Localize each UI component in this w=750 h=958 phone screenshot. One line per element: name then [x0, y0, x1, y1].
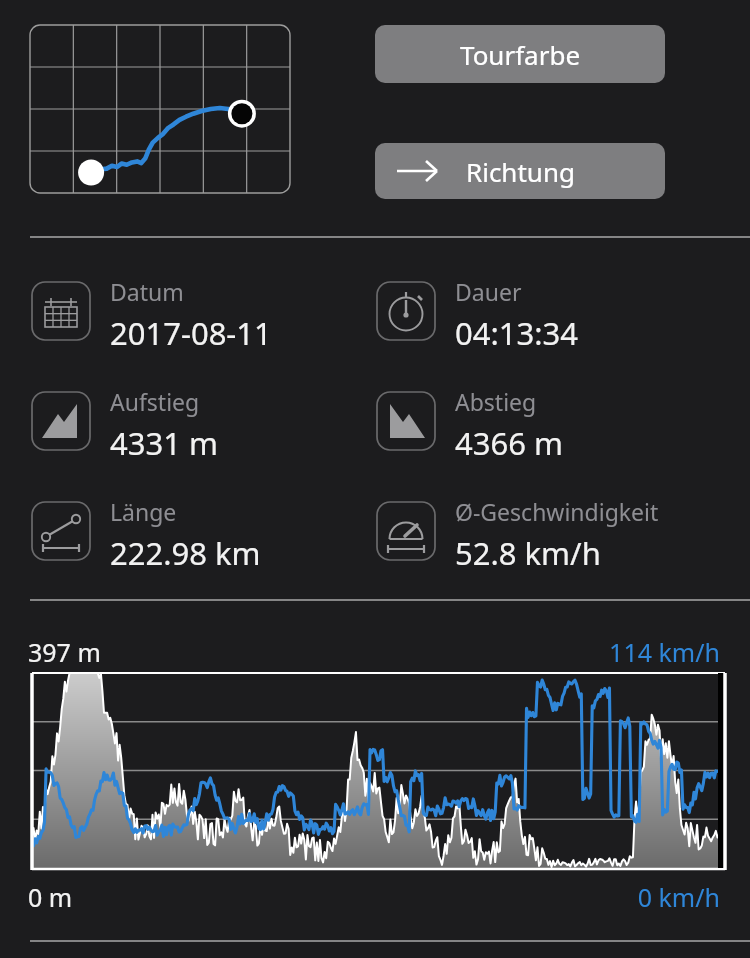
button[interactable]: Direction arrow: [375, 143, 665, 199]
staticText: 4331 m: [110, 422, 218, 464]
button[interactable]: Ø-Geschwindigkeit: [455, 496, 659, 574]
staticText: 114 km/h: [490, 635, 720, 669]
staticText: Dauer: [455, 276, 522, 307]
button[interactable]: Tourfarbe: [375, 25, 665, 83]
staticText: Abstieg: [455, 386, 537, 417]
button[interactable]: Länge: [110, 496, 261, 574]
staticText: 0 m: [28, 880, 73, 914]
staticText: 04:13:34: [455, 312, 579, 354]
staticText: 2017-08-11: [110, 312, 272, 354]
staticText: 0 km/h: [490, 880, 720, 914]
staticText: Länge: [110, 496, 177, 527]
button[interactable]: Dauer: [455, 276, 579, 354]
staticText: 222.98 km: [110, 532, 261, 574]
staticText: Datum: [110, 276, 184, 307]
staticText: 397 m: [28, 635, 101, 669]
staticText: 4366 m: [455, 422, 563, 464]
staticText: Tourfarbe: [460, 37, 581, 72]
button[interactable]: Aufstieg: [110, 386, 218, 464]
staticText: 52.8 km/h: [455, 532, 601, 574]
button[interactable]: Abstieg: [455, 386, 563, 464]
button[interactable]: Datum: [110, 276, 272, 354]
staticText: Aufstieg: [110, 386, 200, 417]
other: Direction arrow: [375, 143, 665, 199]
staticText: Richtung: [466, 154, 575, 189]
staticText: Ø-Geschwindigkeit: [455, 496, 659, 527]
